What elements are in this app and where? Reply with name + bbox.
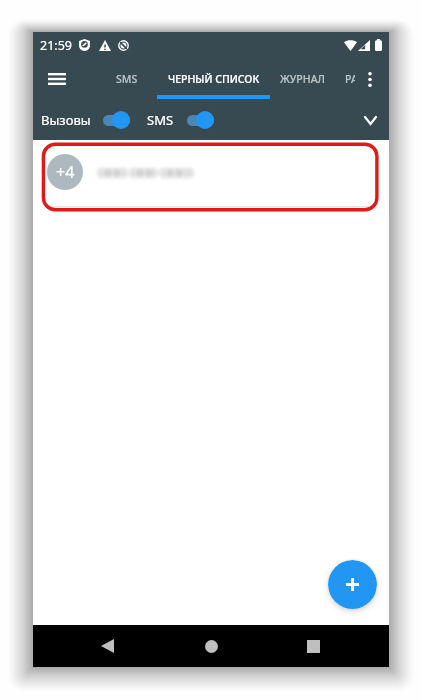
- staticText: ЖУРНАЛ: [280, 72, 325, 86]
- button[interactable]: Back: [87, 625, 127, 667]
- button[interactable]: Toggle: [102, 108, 137, 132]
- staticText: Вызовы: [41, 111, 91, 129]
- button[interactable]: ЧЕРНЫЙ СПИСОК: [157, 58, 270, 100]
- button[interactable]: Open navigation menu: [41, 58, 73, 100]
- button[interactable]: ЖУРНАЛ: [271, 58, 333, 100]
- staticText: SMS: [116, 72, 138, 86]
- staticText: ЧЕРНЫЙ СПИСОК: [168, 72, 260, 86]
- button[interactable]: Toggle: [186, 108, 221, 132]
- button[interactable]: Expand filters: [351, 100, 389, 140]
- button[interactable]: Home: [191, 625, 231, 667]
- button[interactable]: РАСПИС: [345, 58, 355, 100]
- staticText: РАСПИС: [345, 72, 355, 86]
- staticText: +4: [56, 161, 75, 183]
- button[interactable]: More options: [355, 58, 385, 100]
- button[interactable]: SMS: [103, 58, 151, 100]
- button[interactable]: +4: [45, 149, 377, 206]
- staticText: 21:59: [40, 37, 72, 54]
- button[interactable]: Add entry: [328, 560, 377, 609]
- staticText: SMS: [147, 111, 174, 129]
- button[interactable]: Recent apps: [293, 625, 333, 667]
